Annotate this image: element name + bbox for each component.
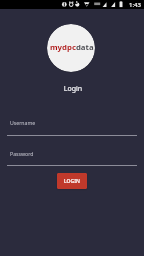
other: mydpcdata logo xyxy=(47,24,95,72)
staticText: 1:43 xyxy=(129,1,141,9)
staticText: Login xyxy=(1,84,144,94)
staticText: mydpcdata xyxy=(50,42,94,53)
staticText: Password xyxy=(10,150,34,157)
button[interactable]: Password xyxy=(7,147,137,167)
staticText: LOGIN xyxy=(64,178,80,185)
button[interactable]: Username xyxy=(7,116,137,136)
button[interactable]: LOGIN xyxy=(57,173,87,189)
staticText: Username xyxy=(10,119,36,126)
